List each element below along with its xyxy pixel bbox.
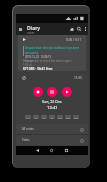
staticText: 12:41 xyxy=(47,105,58,111)
staticText: 10x xyxy=(58,116,62,119)
button[interactable]: Home xyxy=(47,146,55,155)
button[interactable]: Stop xyxy=(33,87,43,97)
staticText: 30x xyxy=(74,116,78,119)
staticText: 571 MB · 16:41 free xyxy=(23,67,53,71)
staticText: Tasks xyxy=(22,138,30,142)
button[interactable]: Recording quality xyxy=(20,74,27,81)
staticText: 1x xyxy=(27,116,30,119)
staticText: Inspection device without system acousti… xyxy=(25,45,86,55)
button[interactable]: Pause xyxy=(47,87,57,97)
button[interactable]: 30x xyxy=(73,115,79,119)
staticText: Remember to check the device again xyxy=(25,59,72,63)
button[interactable]: 1x xyxy=(25,115,31,119)
button[interactable]: Back xyxy=(33,146,41,155)
button[interactable]: 3x xyxy=(41,115,47,119)
button[interactable]: Play xyxy=(62,87,72,97)
button[interactable]: Filter xyxy=(78,137,85,144)
button[interactable]: 0:05 / 5:11 xyxy=(18,35,86,71)
button[interactable]: Navigation drawer xyxy=(16,23,24,35)
staticText: 5x xyxy=(51,116,54,119)
staticText: Sun, 23 Dec xyxy=(42,99,62,104)
button[interactable]: Sort xyxy=(78,126,85,133)
button[interactable]: 2x xyxy=(33,115,39,119)
button[interactable]: Tasks xyxy=(16,135,88,145)
staticText: Diary xyxy=(27,24,41,31)
staticText: 20x xyxy=(66,116,70,119)
button[interactable]: All notes xyxy=(16,124,88,134)
staticText: notes xyxy=(27,31,35,35)
staticText: 0:05 / 5:11 xyxy=(66,38,82,42)
button[interactable]: Recent apps xyxy=(62,146,70,155)
staticText: 2x xyxy=(35,116,38,119)
button[interactable]: 10x xyxy=(57,115,63,119)
button[interactable]: 5x xyxy=(49,115,55,119)
staticText: 1:09 of xyxy=(23,63,32,67)
staticText: All notes xyxy=(22,127,34,131)
button[interactable]: Search xyxy=(75,23,82,35)
staticText: 15:35 xyxy=(74,76,83,80)
staticText: 2018-12-23 12:38:13 xyxy=(25,55,52,59)
button[interactable]: 20x xyxy=(65,115,71,119)
button[interactable]: Sync xyxy=(68,23,75,35)
button[interactable]: More options xyxy=(82,23,88,35)
staticText: 3x xyxy=(43,116,46,119)
staticText: Storage xyxy=(23,59,33,63)
